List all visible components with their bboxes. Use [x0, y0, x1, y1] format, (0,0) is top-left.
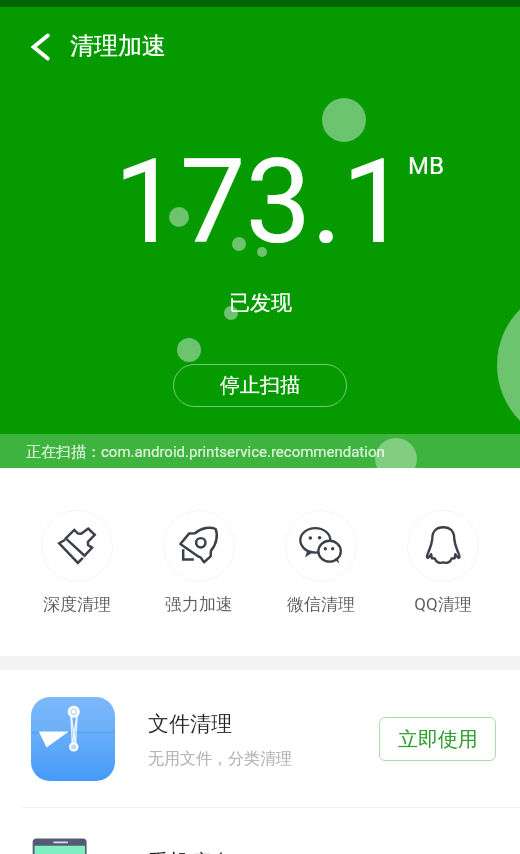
button[interactable]: 深度清理 — [16, 468, 138, 615]
button[interactable]: QQ清理 — [382, 468, 504, 615]
button[interactable]: 微信清理 — [260, 468, 382, 615]
staticText: QQ清理 — [414, 594, 472, 615]
staticText: 深度清理 — [43, 594, 111, 615]
button[interactable]: 立即使用 — [379, 717, 496, 761]
staticText: 微信清理 — [287, 594, 355, 615]
staticText: 正在扫描：com.android.printservice.recommenda… — [26, 443, 385, 462]
staticText: 立即使用 — [398, 727, 478, 752]
button[interactable]: 手机瘦身 — [0, 808, 520, 854]
staticText: 手机瘦身 — [148, 849, 232, 854]
staticText: 173.1 — [114, 133, 408, 270]
button[interactable]: 文件清理 — [0, 670, 520, 807]
staticText: 文件清理 — [148, 711, 232, 737]
button[interactable]: 强力加速 — [138, 468, 260, 615]
staticText: 停止扫描 — [220, 373, 300, 398]
staticText: 已发现 — [229, 290, 292, 316]
button[interactable]: 停止扫描 — [173, 364, 347, 407]
button[interactable]: Back — [6, 12, 76, 82]
staticText: 无用文件，分类清理 — [148, 749, 292, 769]
staticText: 清理加速 — [70, 31, 166, 61]
staticText: MB — [408, 152, 444, 180]
staticText: 强力加速 — [165, 594, 233, 615]
